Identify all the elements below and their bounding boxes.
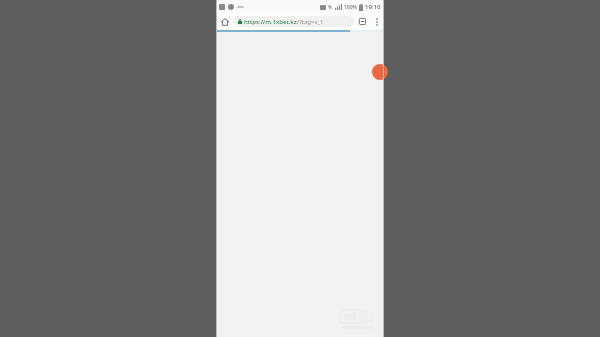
staticText: https://m.1xbet.kz <box>244 18 297 26</box>
staticText: /?tag=s_1 <box>297 18 324 26</box>
staticText: 100% <box>344 4 357 11</box>
staticText: % <box>328 4 333 11</box>
button[interactable]: Home <box>216 13 234 30</box>
staticText: 19:10 <box>365 3 381 11</box>
button[interactable]: Notification bubble <box>372 64 388 80</box>
button[interactable]: Switch tabs <box>354 13 370 30</box>
button[interactable]: More options <box>370 13 384 30</box>
button[interactable]: https://m.1xbet.kz <box>234 16 354 27</box>
